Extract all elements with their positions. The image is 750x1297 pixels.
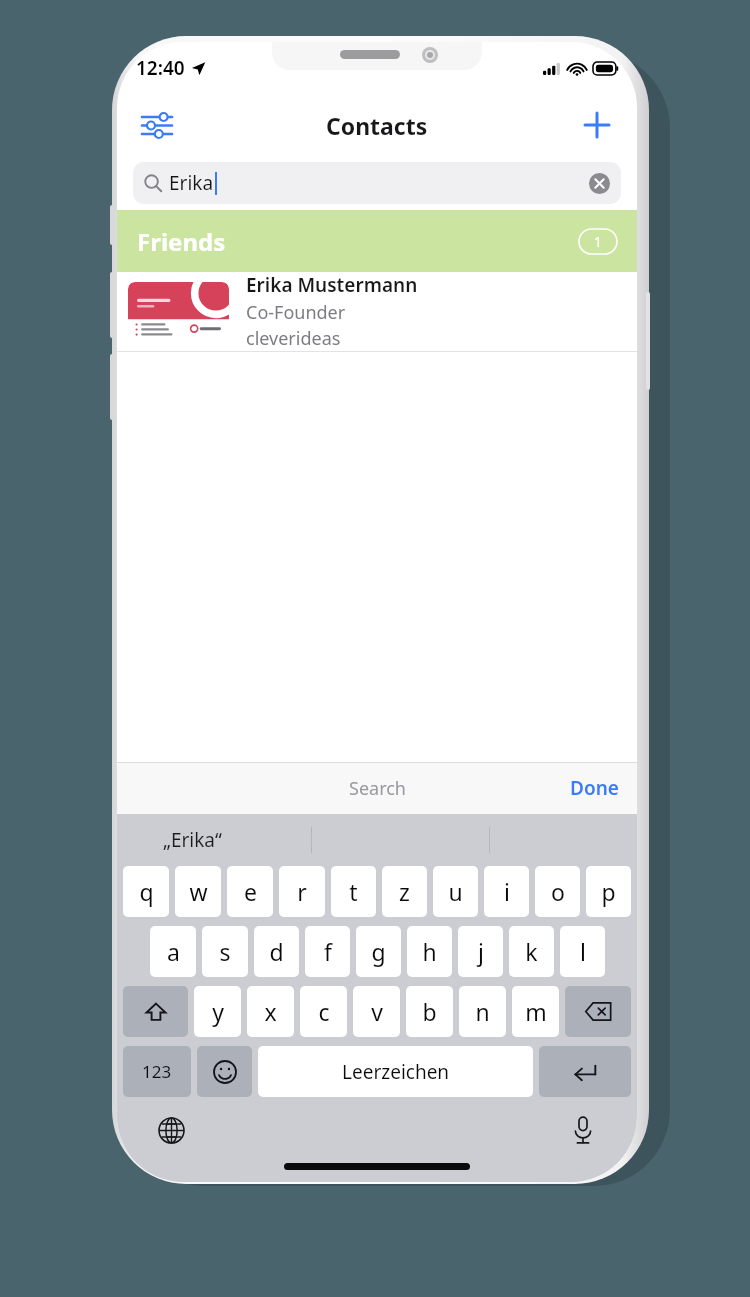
staticText: q: [139, 876, 154, 907]
button[interactable]: t: [331, 866, 376, 917]
button[interactable]: h: [407, 926, 452, 977]
staticText: Erika: [169, 170, 214, 196]
staticText: m: [525, 996, 547, 1027]
button[interactable]: Dictation: [562, 1109, 604, 1151]
button[interactable]: Clear search: [589, 173, 610, 194]
staticText: j: [478, 936, 484, 967]
staticText: 12:40: [136, 55, 185, 81]
staticText: Leerzeichen: [342, 1059, 450, 1085]
button[interactable]: Return: [539, 1046, 631, 1097]
button[interactable]: f: [305, 926, 350, 977]
staticText: v: [371, 996, 383, 1027]
button[interactable]: Filter: [129, 97, 185, 153]
button[interactable]: Erika Mustermann: [117, 272, 637, 351]
button[interactable]: Done: [570, 775, 619, 801]
staticText: Co-Founder: [246, 300, 346, 325]
button[interactable]: 123: [123, 1046, 191, 1097]
staticText: w: [189, 876, 208, 907]
button[interactable]: x: [247, 986, 294, 1037]
staticText: 123: [142, 1060, 172, 1083]
button[interactable]: j: [458, 926, 503, 977]
button[interactable]: Leerzeichen: [258, 1046, 533, 1097]
staticText: t: [349, 876, 358, 907]
button[interactable]: Erika: [133, 162, 621, 204]
staticText: Contacts: [326, 110, 428, 141]
button[interactable]: Add contact: [569, 97, 625, 153]
button[interactable]: Emoji: [197, 1046, 252, 1097]
button[interactable]: v: [353, 986, 400, 1037]
button[interactable]: a: [150, 926, 196, 977]
staticText: f: [324, 936, 332, 967]
button[interactable]: y: [194, 986, 241, 1037]
button[interactable]: Change keyboard language: [150, 1109, 192, 1151]
button[interactable]: n: [459, 986, 506, 1037]
staticText: u: [448, 876, 463, 907]
button[interactable]: Backspace: [565, 986, 631, 1037]
staticText: d: [269, 936, 284, 967]
staticText: y: [212, 996, 224, 1027]
staticText: l: [580, 936, 586, 967]
staticText: cleverideas: [246, 326, 341, 351]
staticText: „Erika“: [163, 827, 222, 853]
staticText: h: [422, 936, 437, 967]
button[interactable]: e: [227, 866, 273, 917]
staticText: x: [264, 996, 277, 1027]
staticText: o: [551, 876, 565, 907]
button[interactable]: u: [433, 866, 478, 917]
button[interactable]: z: [382, 866, 427, 917]
button[interactable]: p: [586, 866, 631, 917]
button[interactable]: s: [202, 926, 248, 977]
button[interactable]: k: [509, 926, 554, 977]
button[interactable]: r: [279, 866, 325, 917]
button[interactable]: w: [175, 866, 221, 917]
button[interactable]: Search: [349, 776, 406, 801]
staticText: a: [167, 936, 180, 967]
button[interactable]: c: [300, 986, 347, 1037]
staticText: Erika Mustermann: [246, 272, 418, 298]
button[interactable]: i: [484, 866, 529, 917]
staticText: z: [399, 876, 410, 907]
staticText: p: [601, 876, 616, 907]
staticText: i: [504, 876, 510, 907]
button[interactable]: g: [356, 926, 401, 977]
staticText: n: [475, 996, 490, 1027]
button[interactable]: q: [123, 866, 169, 917]
staticText: c: [318, 996, 330, 1027]
button[interactable]: Friends: [117, 210, 637, 272]
staticText: s: [219, 936, 231, 967]
button[interactable]: b: [406, 986, 453, 1037]
button[interactable]: Shift: [123, 986, 188, 1037]
button[interactable]: m: [512, 986, 559, 1037]
staticText: e: [244, 876, 257, 907]
staticText: b: [422, 996, 437, 1027]
button[interactable]: d: [254, 926, 299, 977]
staticText: k: [525, 936, 538, 967]
staticText: r: [297, 876, 307, 907]
staticText: g: [371, 936, 386, 967]
staticText: 1: [594, 232, 603, 251]
button[interactable]: l: [560, 926, 605, 977]
button[interactable]: o: [535, 866, 580, 917]
staticText: Friends: [137, 225, 226, 258]
